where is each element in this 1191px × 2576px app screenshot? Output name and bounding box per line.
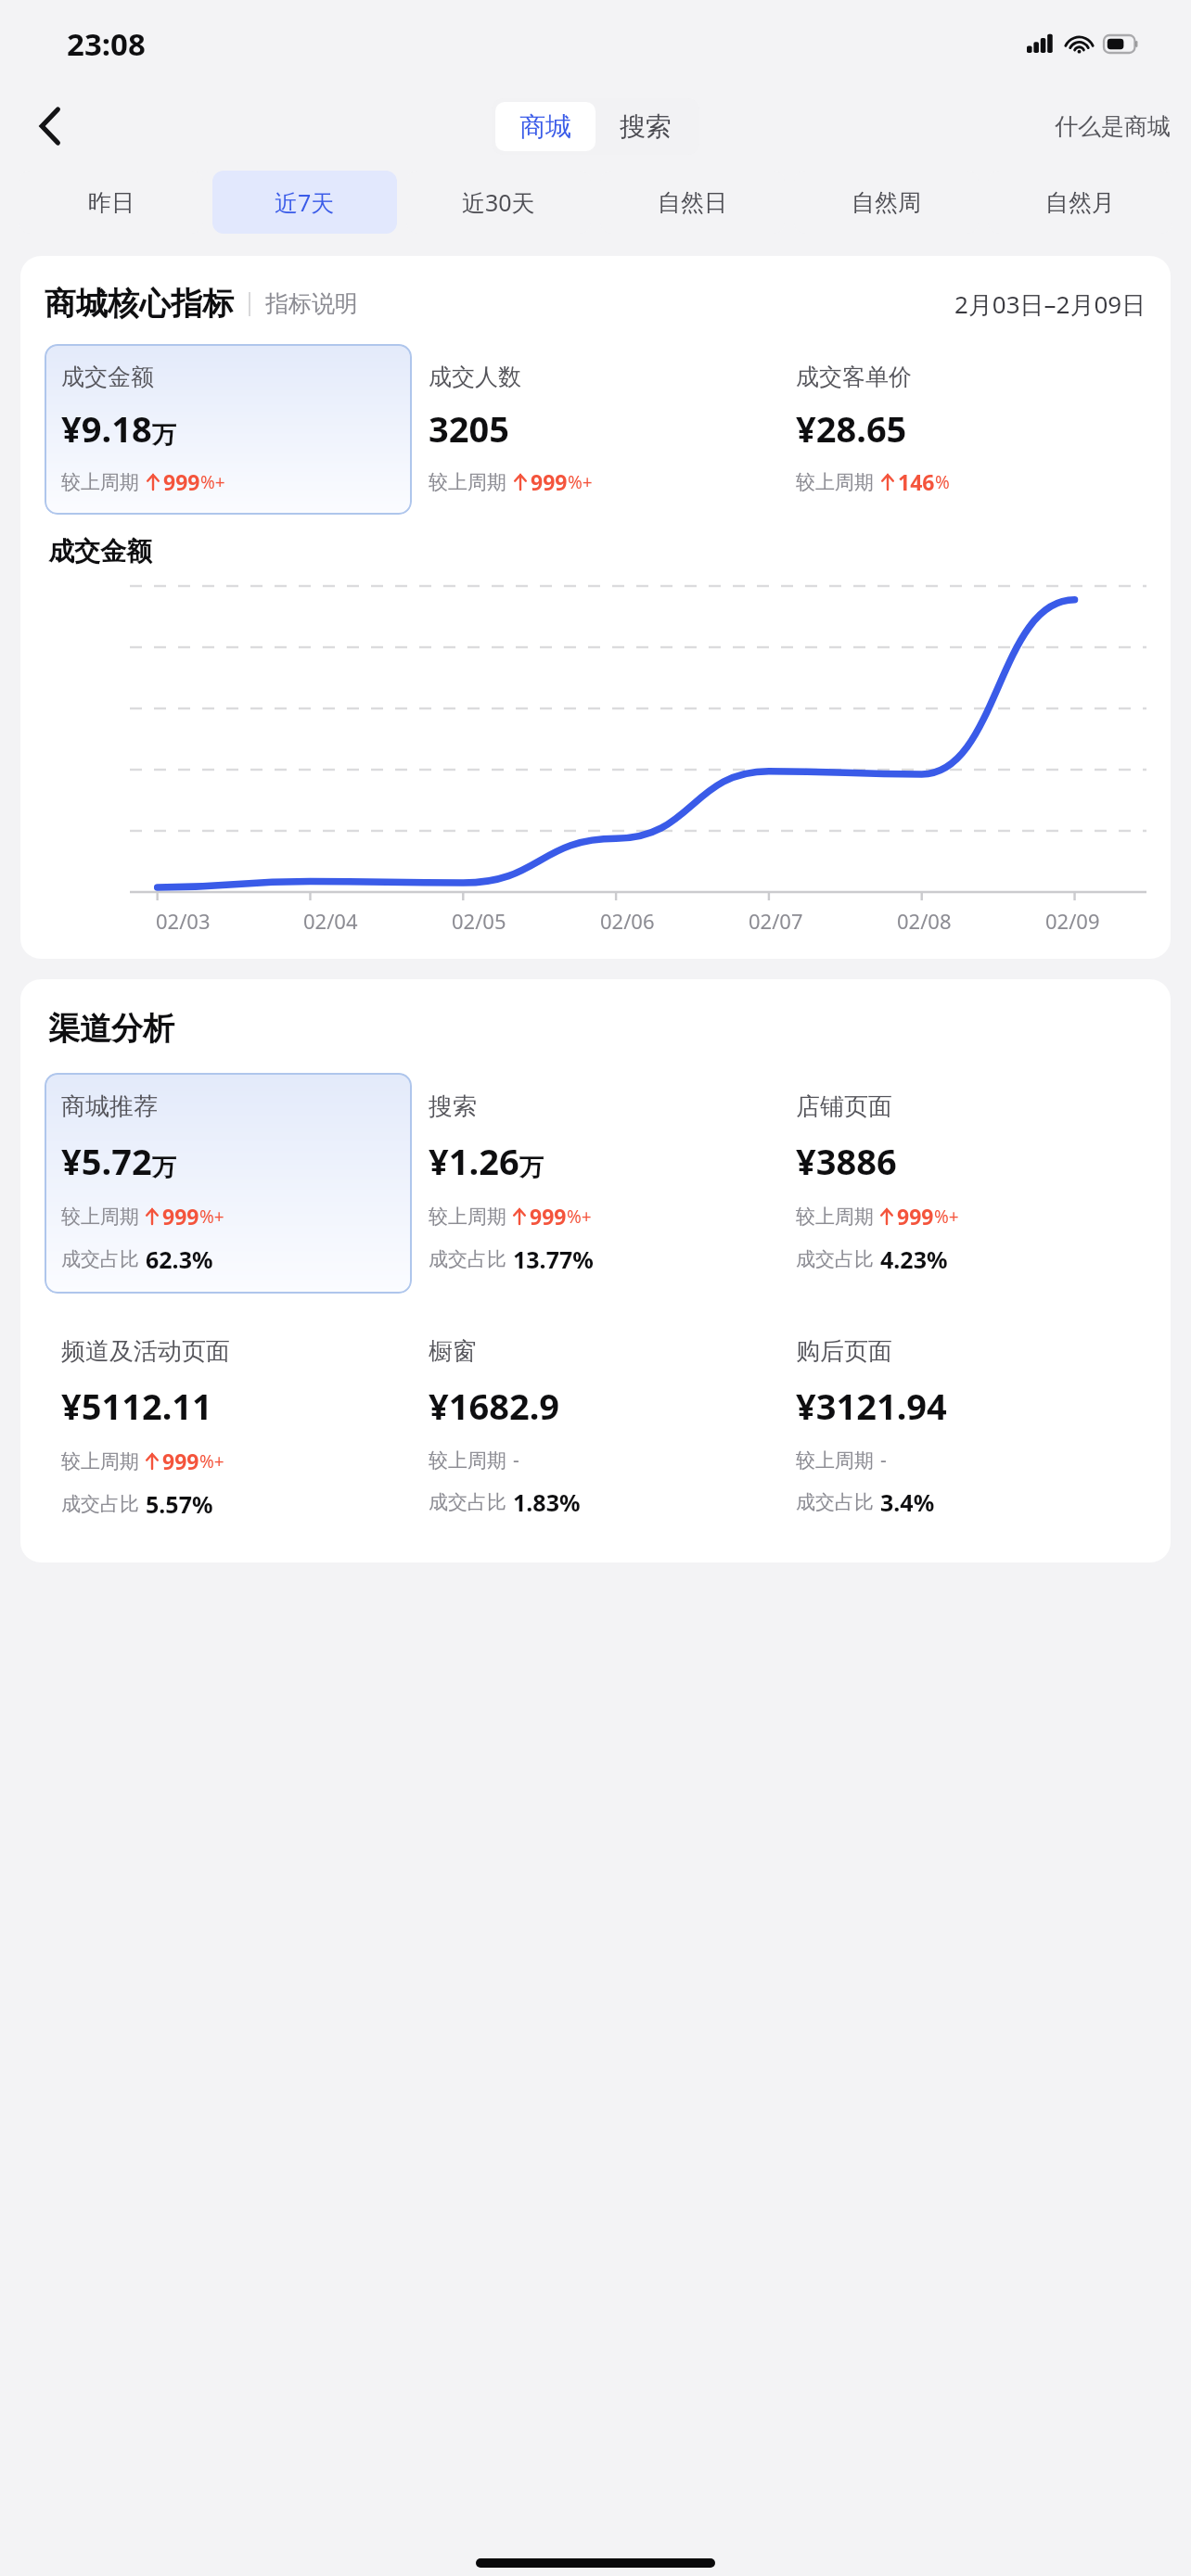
staticText: 搜索 xyxy=(429,1091,477,1122)
staticText: ¥3121.94 xyxy=(796,1382,947,1430)
button[interactable]: 近30天 xyxy=(406,171,591,234)
staticText: ¥3886 xyxy=(796,1137,897,1185)
staticText: 成交占比 xyxy=(796,1490,874,1514)
staticText: 近30天 xyxy=(462,186,535,218)
staticText: 商城 xyxy=(519,110,571,143)
staticText: 较上周期 xyxy=(429,1448,506,1473)
staticText: 昨日 xyxy=(88,188,134,217)
staticText: 成交金额 xyxy=(61,363,154,391)
button[interactable]: 自然日 xyxy=(600,171,785,234)
staticText: ¥5.72 xyxy=(61,1137,152,1185)
button[interactable]: 什么是商城 xyxy=(1055,112,1171,141)
staticText: 商城推荐 xyxy=(61,1091,158,1122)
staticText: 02/05 xyxy=(452,907,506,935)
staticText: 频道及活动页面 xyxy=(61,1336,230,1367)
staticText: 成交金额 xyxy=(48,535,152,567)
staticText: 3.4% xyxy=(880,1486,935,1518)
button[interactable]: 自然月 xyxy=(988,171,1172,234)
staticText: %+ xyxy=(568,470,593,494)
button[interactable]: 店铺页面 xyxy=(779,1073,1146,1294)
staticText: 万 xyxy=(152,1153,176,1183)
staticText: 成交占比 xyxy=(61,1247,139,1271)
staticText: 5.57% xyxy=(146,1488,213,1520)
staticText: 较上周期 xyxy=(61,470,139,494)
button[interactable]: 商城 xyxy=(495,102,595,151)
button[interactable]: 成交人数 xyxy=(412,344,779,515)
staticText: 999 xyxy=(531,467,568,496)
staticText: 999 xyxy=(162,1202,199,1231)
button[interactable]: 成交客单价 xyxy=(779,344,1146,515)
staticText: %+ xyxy=(199,1205,224,1229)
staticText: 商城核心指标 xyxy=(45,284,234,324)
staticText: 4.23% xyxy=(880,1243,948,1275)
staticText: ¥5112.11 xyxy=(61,1382,212,1430)
staticText: 02/06 xyxy=(600,907,655,935)
button[interactable]: 搜索 xyxy=(412,1073,779,1294)
staticText: 搜索 xyxy=(620,110,672,143)
staticText: 万 xyxy=(519,1153,544,1183)
staticText: 成交占比 xyxy=(61,1492,139,1516)
button[interactable]: 成交金额 xyxy=(45,344,412,515)
staticText: 999 xyxy=(163,467,200,496)
staticText: 较上周期 xyxy=(796,1205,874,1229)
button[interactable]: 近7天 xyxy=(212,171,397,234)
staticText: ¥1682.9 xyxy=(429,1382,560,1430)
staticText: 橱窗 xyxy=(429,1336,477,1367)
button[interactable]: 商城推荐 xyxy=(45,1073,412,1294)
staticText: 1.83% xyxy=(513,1486,581,1518)
staticText: 02/07 xyxy=(749,907,803,935)
staticText: 较上周期 xyxy=(796,470,874,494)
button[interactable]: 频道及活动页面 xyxy=(45,1318,412,1538)
staticText: 渠道分析 xyxy=(48,1009,174,1049)
staticText: ¥28.65 xyxy=(796,404,907,453)
staticText: 自然月 xyxy=(1045,188,1115,217)
staticText: 02/09 xyxy=(1045,907,1100,935)
staticText: ¥1.26 xyxy=(429,1137,519,1185)
button[interactable]: 购后页面 xyxy=(779,1318,1146,1537)
staticText: %+ xyxy=(567,1205,592,1229)
button[interactable]: 橱窗 xyxy=(412,1318,779,1537)
staticText: 999 xyxy=(897,1202,934,1231)
staticText: - xyxy=(880,1447,887,1473)
button[interactable]: 搜索 xyxy=(595,102,696,151)
staticText: 成交人数 xyxy=(429,363,521,391)
staticText: 店铺页面 xyxy=(796,1091,892,1122)
staticText: - xyxy=(513,1447,519,1473)
button[interactable]: Back xyxy=(24,100,76,152)
staticText: 成交占比 xyxy=(429,1247,506,1271)
button[interactable]: 自然周 xyxy=(794,171,979,234)
staticText: % xyxy=(935,470,950,494)
staticText: 02/04 xyxy=(303,907,358,935)
staticText: 较上周期 xyxy=(429,1205,506,1229)
staticText: 购后页面 xyxy=(796,1336,892,1367)
staticText: 较上周期 xyxy=(796,1448,874,1473)
button[interactable]: 指标说明 xyxy=(265,289,358,318)
staticText: 万 xyxy=(152,420,176,451)
staticText: 62.3% xyxy=(146,1243,213,1275)
staticText: ¥9.18 xyxy=(61,404,152,453)
staticText: 自然日 xyxy=(658,188,727,217)
staticText: 13.77% xyxy=(513,1243,594,1275)
staticText: %+ xyxy=(934,1205,959,1229)
staticText: 146 xyxy=(898,467,935,496)
staticText: 3205 xyxy=(429,404,509,453)
staticText: 较上周期 xyxy=(429,470,506,494)
staticText: 成交占比 xyxy=(429,1490,506,1514)
staticText: 02/03 xyxy=(156,907,211,935)
button[interactable]: 昨日 xyxy=(19,171,203,234)
staticText: %+ xyxy=(199,1449,224,1473)
staticText: 自然周 xyxy=(852,188,921,217)
staticText: 成交占比 xyxy=(796,1247,874,1271)
staticText: 较上周期 xyxy=(61,1205,139,1229)
staticText: 近7天 xyxy=(275,186,335,218)
staticText: 23:08 xyxy=(67,23,146,65)
staticText: 02/08 xyxy=(897,907,952,935)
staticText: %+ xyxy=(200,470,225,494)
staticText: 较上周期 xyxy=(61,1449,139,1473)
